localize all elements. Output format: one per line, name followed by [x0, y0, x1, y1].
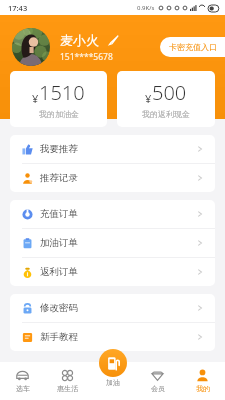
- staticText: 充值订单: [40, 208, 196, 220]
- button[interactable]: 推荐记录: [10, 164, 215, 192]
- staticText: 我要推荐: [40, 143, 196, 155]
- staticText: 新手教程: [40, 331, 196, 343]
- staticText: 修改密码: [40, 302, 196, 314]
- staticText: 加油: [106, 378, 120, 387]
- staticText: 会员: [151, 384, 165, 393]
- button[interactable]: 我的: [180, 362, 225, 400]
- button[interactable]: 返利订单: [10, 258, 215, 286]
- button[interactable]: 充值订单: [10, 200, 215, 228]
- staticText: 0.9K/s: [137, 4, 155, 12]
- button[interactable]: ¥: [117, 71, 215, 127]
- staticText: 加油订单: [40, 237, 196, 249]
- staticText: ¥: [32, 91, 39, 106]
- staticText: 返利订单: [40, 266, 196, 278]
- other: 加油: [99, 349, 127, 377]
- button[interactable]: 惠生活: [45, 362, 90, 400]
- staticText: 麦小火: [60, 32, 99, 48]
- button[interactable]: 选车: [0, 362, 45, 400]
- button[interactable]: 加油: [99, 349, 127, 387]
- button[interactable]: Profile photo: [12, 28, 50, 66]
- staticText: 我的: [196, 384, 210, 393]
- button[interactable]: 会员: [135, 362, 180, 400]
- staticText: 我的加油金: [39, 109, 79, 119]
- staticText: 推荐记录: [40, 172, 196, 184]
- button[interactable]: 我要推荐: [10, 135, 215, 163]
- staticText: 卡密充值入口: [169, 42, 217, 52]
- staticText: 1510: [39, 79, 85, 106]
- staticText: 选车: [16, 384, 30, 393]
- button[interactable]: Edit name: [107, 33, 121, 47]
- staticText: 我的返利现金: [142, 109, 190, 119]
- staticText: 17:43: [8, 3, 28, 13]
- button[interactable]: ¥: [10, 71, 107, 127]
- button[interactable]: 加油订单: [10, 229, 215, 257]
- staticText: 151****5678: [60, 51, 113, 63]
- staticText: 惠生活: [57, 384, 78, 393]
- button[interactable]: 新手教程: [10, 323, 215, 351]
- button[interactable]: 卡密充值入口: [160, 37, 225, 57]
- button[interactable]: 修改密码: [10, 294, 215, 322]
- staticText: 500: [152, 79, 187, 106]
- staticText: ¥: [145, 91, 152, 106]
